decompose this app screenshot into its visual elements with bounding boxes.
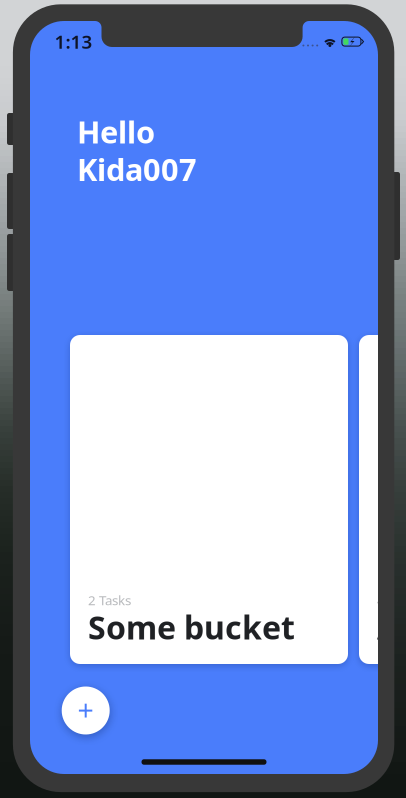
staticText: Kida007 bbox=[77, 149, 197, 189]
staticText: Another bbox=[377, 606, 406, 648]
staticText: Hello bbox=[77, 111, 155, 152]
staticText: 1:13 bbox=[54, 29, 92, 54]
button[interactable]: 4 Tasks bbox=[359, 335, 406, 664]
button[interactable]: 2 Tasks bbox=[70, 335, 348, 664]
staticText: 4 Tasks bbox=[377, 591, 406, 609]
staticText: Some bucket bbox=[88, 606, 295, 648]
staticText: 2 Tasks bbox=[88, 591, 131, 609]
button[interactable]: Add bucket bbox=[62, 686, 110, 734]
